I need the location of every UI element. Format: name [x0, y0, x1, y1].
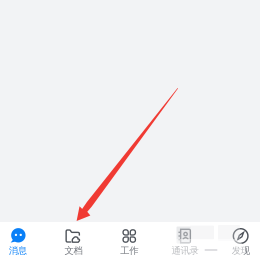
button[interactable]: 消息: [0, 222, 46, 259]
staticText: 通讯录: [171, 245, 198, 256]
staticText: 消息: [9, 245, 27, 256]
button[interactable]: 工作: [101, 222, 157, 259]
button[interactable]: 文档: [46, 222, 101, 259]
button[interactable]: 通讯录: [157, 222, 213, 259]
staticText: 工作: [120, 245, 138, 256]
staticText: 文档: [65, 245, 83, 256]
button[interactable]: 发现: [213, 222, 260, 259]
staticText: 发现: [232, 245, 250, 256]
